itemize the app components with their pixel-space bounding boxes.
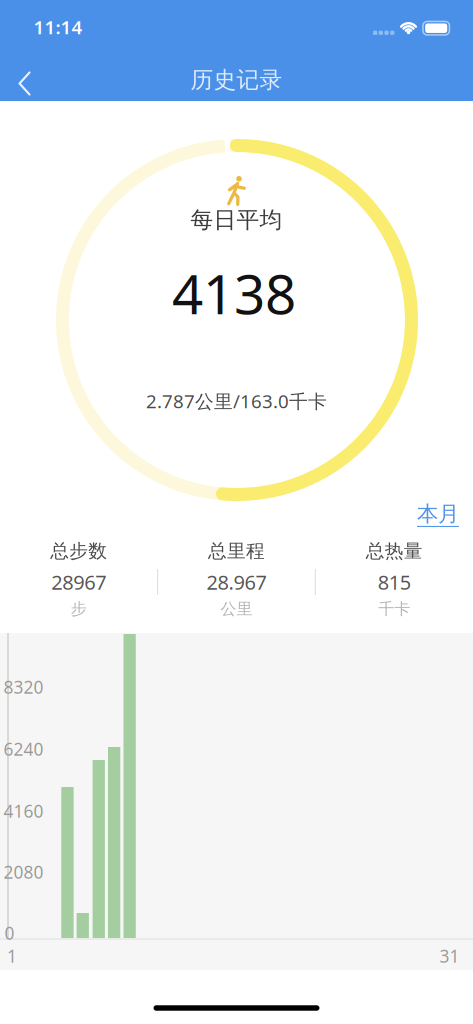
staticText: 4160 bbox=[3, 799, 43, 822]
staticText: 总里程 bbox=[208, 539, 265, 562]
staticText: 每日平均 bbox=[190, 206, 282, 234]
staticText: 本月 bbox=[417, 501, 459, 527]
staticText: 11:14 bbox=[33, 15, 82, 39]
staticText: 千卡 bbox=[378, 599, 410, 619]
staticText: 28.967 bbox=[206, 569, 266, 595]
staticText: 31 bbox=[439, 944, 459, 967]
staticText: 2080 bbox=[3, 860, 43, 883]
staticText: 总步数 bbox=[50, 539, 107, 562]
staticText: 815 bbox=[378, 569, 411, 595]
staticText: 总热量 bbox=[366, 539, 423, 562]
button[interactable]: 本月 bbox=[417, 501, 459, 527]
staticText: 1 bbox=[7, 944, 17, 967]
staticText: 8320 bbox=[3, 675, 43, 698]
staticText: 步 bbox=[71, 599, 87, 619]
staticText: 公里 bbox=[220, 599, 252, 619]
button[interactable] bbox=[2, 66, 46, 100]
staticText: 4138 bbox=[172, 257, 296, 329]
staticText: 历史记录 bbox=[190, 66, 282, 94]
staticText: 2.787公里/163.0千卡 bbox=[146, 389, 327, 413]
staticText: 28967 bbox=[51, 569, 106, 595]
staticText: 0 bbox=[5, 921, 15, 944]
staticText: 6240 bbox=[3, 737, 43, 760]
